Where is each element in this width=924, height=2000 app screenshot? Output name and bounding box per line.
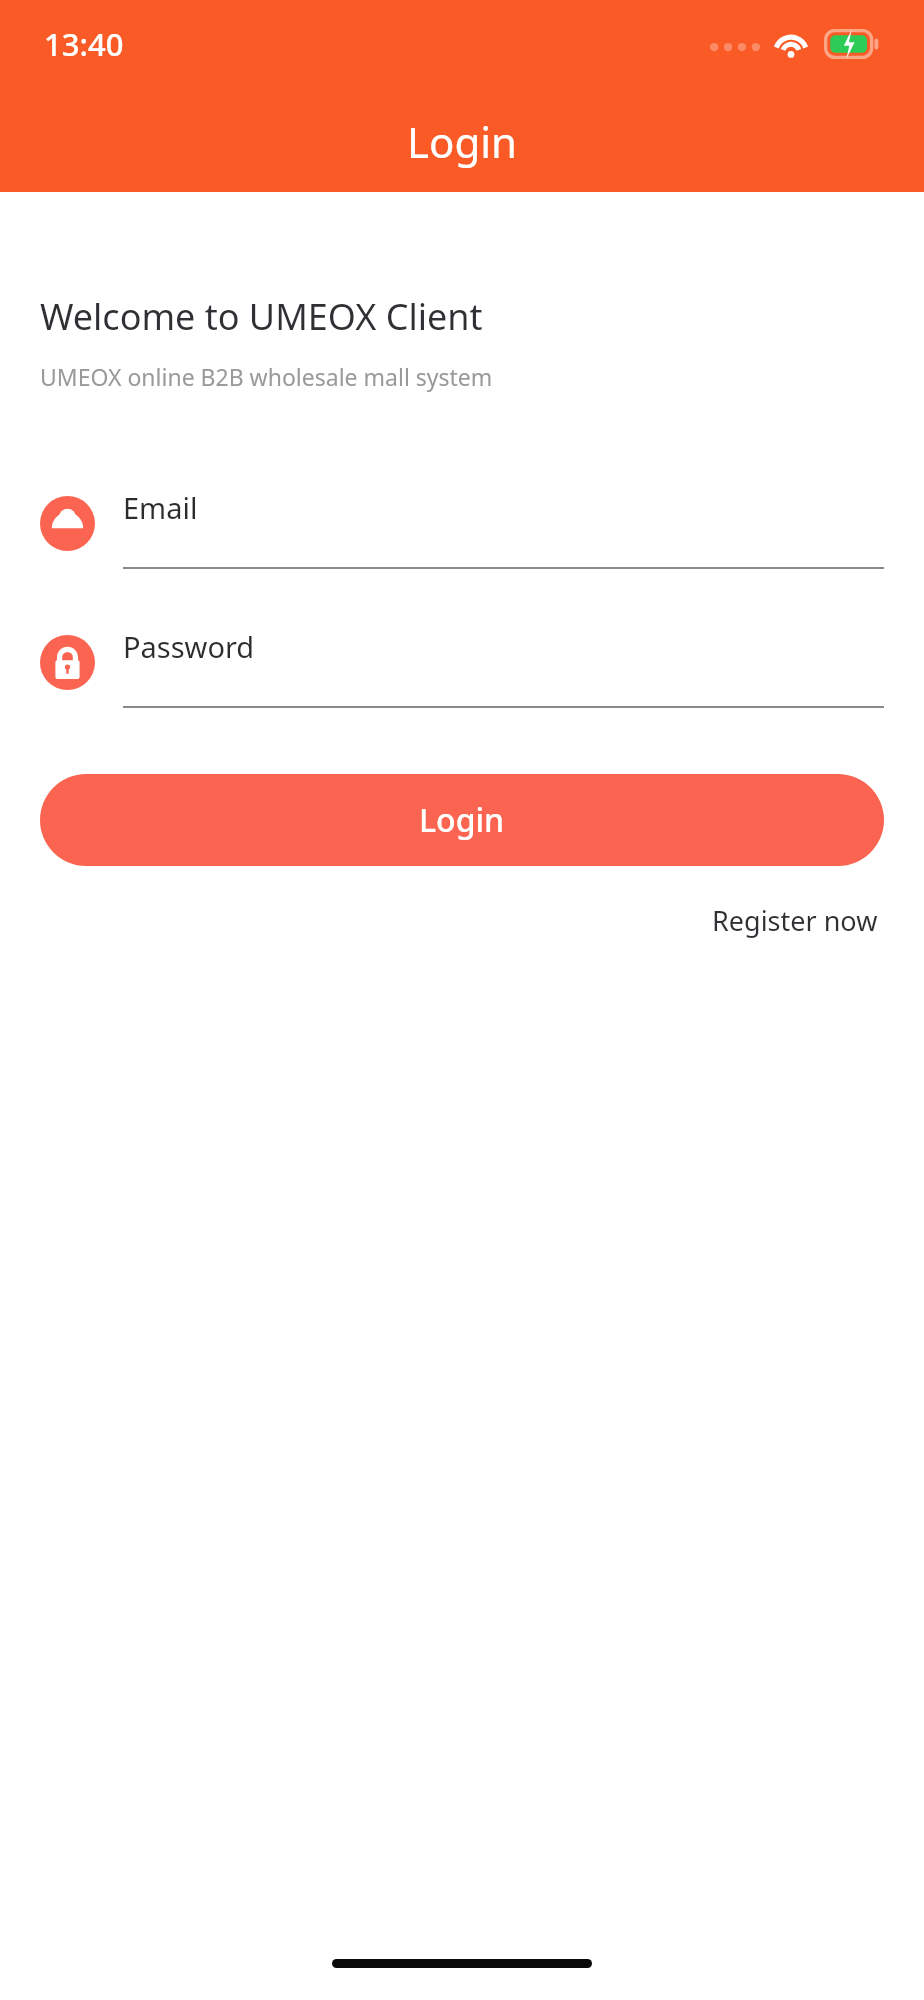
staticText: Login bbox=[419, 798, 505, 842]
other: Battery charging bbox=[824, 29, 880, 59]
button[interactable]: Password bbox=[123, 627, 884, 708]
button[interactable]: Register now bbox=[706, 896, 884, 945]
other: Password bbox=[40, 635, 95, 690]
staticText: UMEOX online B2B wholesale mall system bbox=[40, 361, 493, 392]
staticText: 13:40 bbox=[44, 23, 124, 65]
staticText: Password bbox=[123, 627, 255, 666]
other: Wi-Fi bbox=[774, 31, 808, 57]
button[interactable]: Login bbox=[40, 774, 884, 866]
staticText: Email bbox=[123, 488, 198, 527]
staticText: Login bbox=[407, 113, 518, 170]
staticText: Welcome to UMEOX Client bbox=[40, 292, 483, 341]
button[interactable]: Email bbox=[123, 488, 884, 569]
staticText: Register now bbox=[712, 902, 878, 939]
other: Email account bbox=[40, 496, 95, 551]
